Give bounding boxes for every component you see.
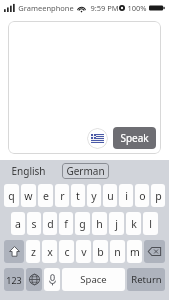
staticText: b bbox=[97, 245, 104, 259]
staticText: 123 bbox=[6, 274, 22, 286]
button[interactable]: m bbox=[127, 240, 142, 263]
button[interactable]: y bbox=[87, 184, 101, 207]
button[interactable]: p bbox=[151, 184, 165, 207]
staticText: q bbox=[8, 189, 15, 203]
staticText: t bbox=[76, 189, 80, 203]
staticText: h bbox=[96, 217, 103, 231]
button[interactable]: s bbox=[27, 212, 41, 235]
staticText: l bbox=[149, 217, 152, 231]
button[interactable]: Backspace bbox=[144, 240, 165, 263]
staticText: English bbox=[11, 164, 46, 178]
staticText: f bbox=[64, 217, 68, 231]
staticText: Speak bbox=[120, 131, 149, 145]
staticText: 9:59 PM bbox=[90, 3, 119, 13]
button[interactable]: German bbox=[57, 160, 113, 182]
staticText: o bbox=[139, 189, 146, 203]
staticText: i bbox=[125, 189, 128, 203]
button[interactable]: Greek language bbox=[8, 21, 161, 154]
staticText: r bbox=[60, 189, 65, 203]
button[interactable]: l bbox=[143, 212, 158, 235]
staticText: p bbox=[155, 189, 162, 203]
button[interactable]: English bbox=[0, 160, 57, 182]
button[interactable]: o bbox=[135, 184, 149, 207]
button[interactable]: c bbox=[59, 240, 74, 263]
button[interactable]: Return bbox=[127, 268, 165, 291]
staticText: w bbox=[24, 189, 33, 203]
staticText: Grameenphone bbox=[18, 3, 74, 13]
staticText: 100% bbox=[127, 3, 147, 13]
button[interactable]: h bbox=[92, 212, 107, 235]
button[interactable]: g bbox=[75, 212, 90, 235]
staticText: e bbox=[43, 189, 49, 203]
staticText: y bbox=[91, 189, 97, 203]
staticText: k bbox=[131, 217, 137, 231]
button[interactable]: Speak bbox=[113, 127, 156, 149]
button[interactable]: u bbox=[103, 184, 117, 207]
staticText: d bbox=[47, 217, 54, 231]
staticText: g bbox=[79, 217, 86, 231]
button[interactable]: x bbox=[42, 240, 57, 263]
staticText: z bbox=[31, 245, 36, 259]
button[interactable]: q bbox=[4, 184, 19, 207]
button[interactable]: f bbox=[59, 212, 73, 235]
staticText: German bbox=[66, 164, 105, 178]
staticText: v bbox=[81, 245, 87, 259]
staticText: s bbox=[31, 217, 37, 231]
button[interactable]: 123 bbox=[4, 268, 24, 291]
button[interactable]: v bbox=[76, 240, 91, 263]
button[interactable]: j bbox=[109, 212, 124, 235]
button[interactable]: a bbox=[11, 212, 25, 235]
button[interactable]: i bbox=[119, 184, 133, 207]
staticText: j bbox=[115, 217, 118, 231]
button[interactable]: b bbox=[93, 240, 108, 263]
button[interactable]: n bbox=[110, 240, 125, 263]
button[interactable]: w bbox=[21, 184, 36, 207]
button[interactable]: Greek language bbox=[87, 128, 108, 149]
button[interactable]: t bbox=[71, 184, 85, 207]
staticText: n bbox=[114, 245, 121, 259]
button[interactable]: k bbox=[126, 212, 141, 235]
staticText: u bbox=[107, 189, 114, 203]
button[interactable]: r bbox=[55, 184, 69, 207]
staticText: Return bbox=[131, 273, 162, 286]
button[interactable]: d bbox=[43, 212, 57, 235]
button[interactable]: Space bbox=[62, 268, 125, 291]
staticText: Space bbox=[80, 273, 107, 286]
staticText: a bbox=[15, 217, 21, 231]
button[interactable]: Switch keyboard bbox=[26, 268, 42, 291]
button[interactable]: Shift bbox=[4, 240, 24, 263]
button[interactable]: e bbox=[38, 184, 53, 207]
staticText: c bbox=[64, 245, 70, 259]
staticText: m bbox=[130, 245, 140, 259]
button[interactable]: z bbox=[26, 240, 40, 263]
staticText: x bbox=[47, 245, 53, 259]
button[interactable]: Dictation bbox=[44, 268, 60, 291]
